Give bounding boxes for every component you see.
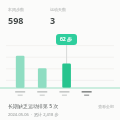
other: 步数柱状图	[0, 30, 120, 96]
staticText: 本周步数	[8, 7, 24, 12]
staticText: 2024-05-06 · 累计 2,418 步	[8, 112, 59, 117]
button[interactable]: 62 步	[56, 34, 77, 45]
staticText: 长期缺乏运动排第 5 次	[8, 103, 98, 110]
button[interactable]: 本周步数	[8, 7, 50, 26]
staticText: 运动天数	[50, 7, 66, 12]
button[interactable]: 步数柱状图	[0, 30, 120, 96]
button[interactable]: 运动天数	[50, 7, 92, 26]
staticText: 598	[8, 14, 24, 26]
button[interactable]: 长期缺乏运动排第 5 次	[0, 99, 120, 120]
staticText: 62 步	[60, 36, 73, 43]
staticText: 查看全部	[98, 104, 114, 109]
staticText: 3	[50, 14, 56, 26]
